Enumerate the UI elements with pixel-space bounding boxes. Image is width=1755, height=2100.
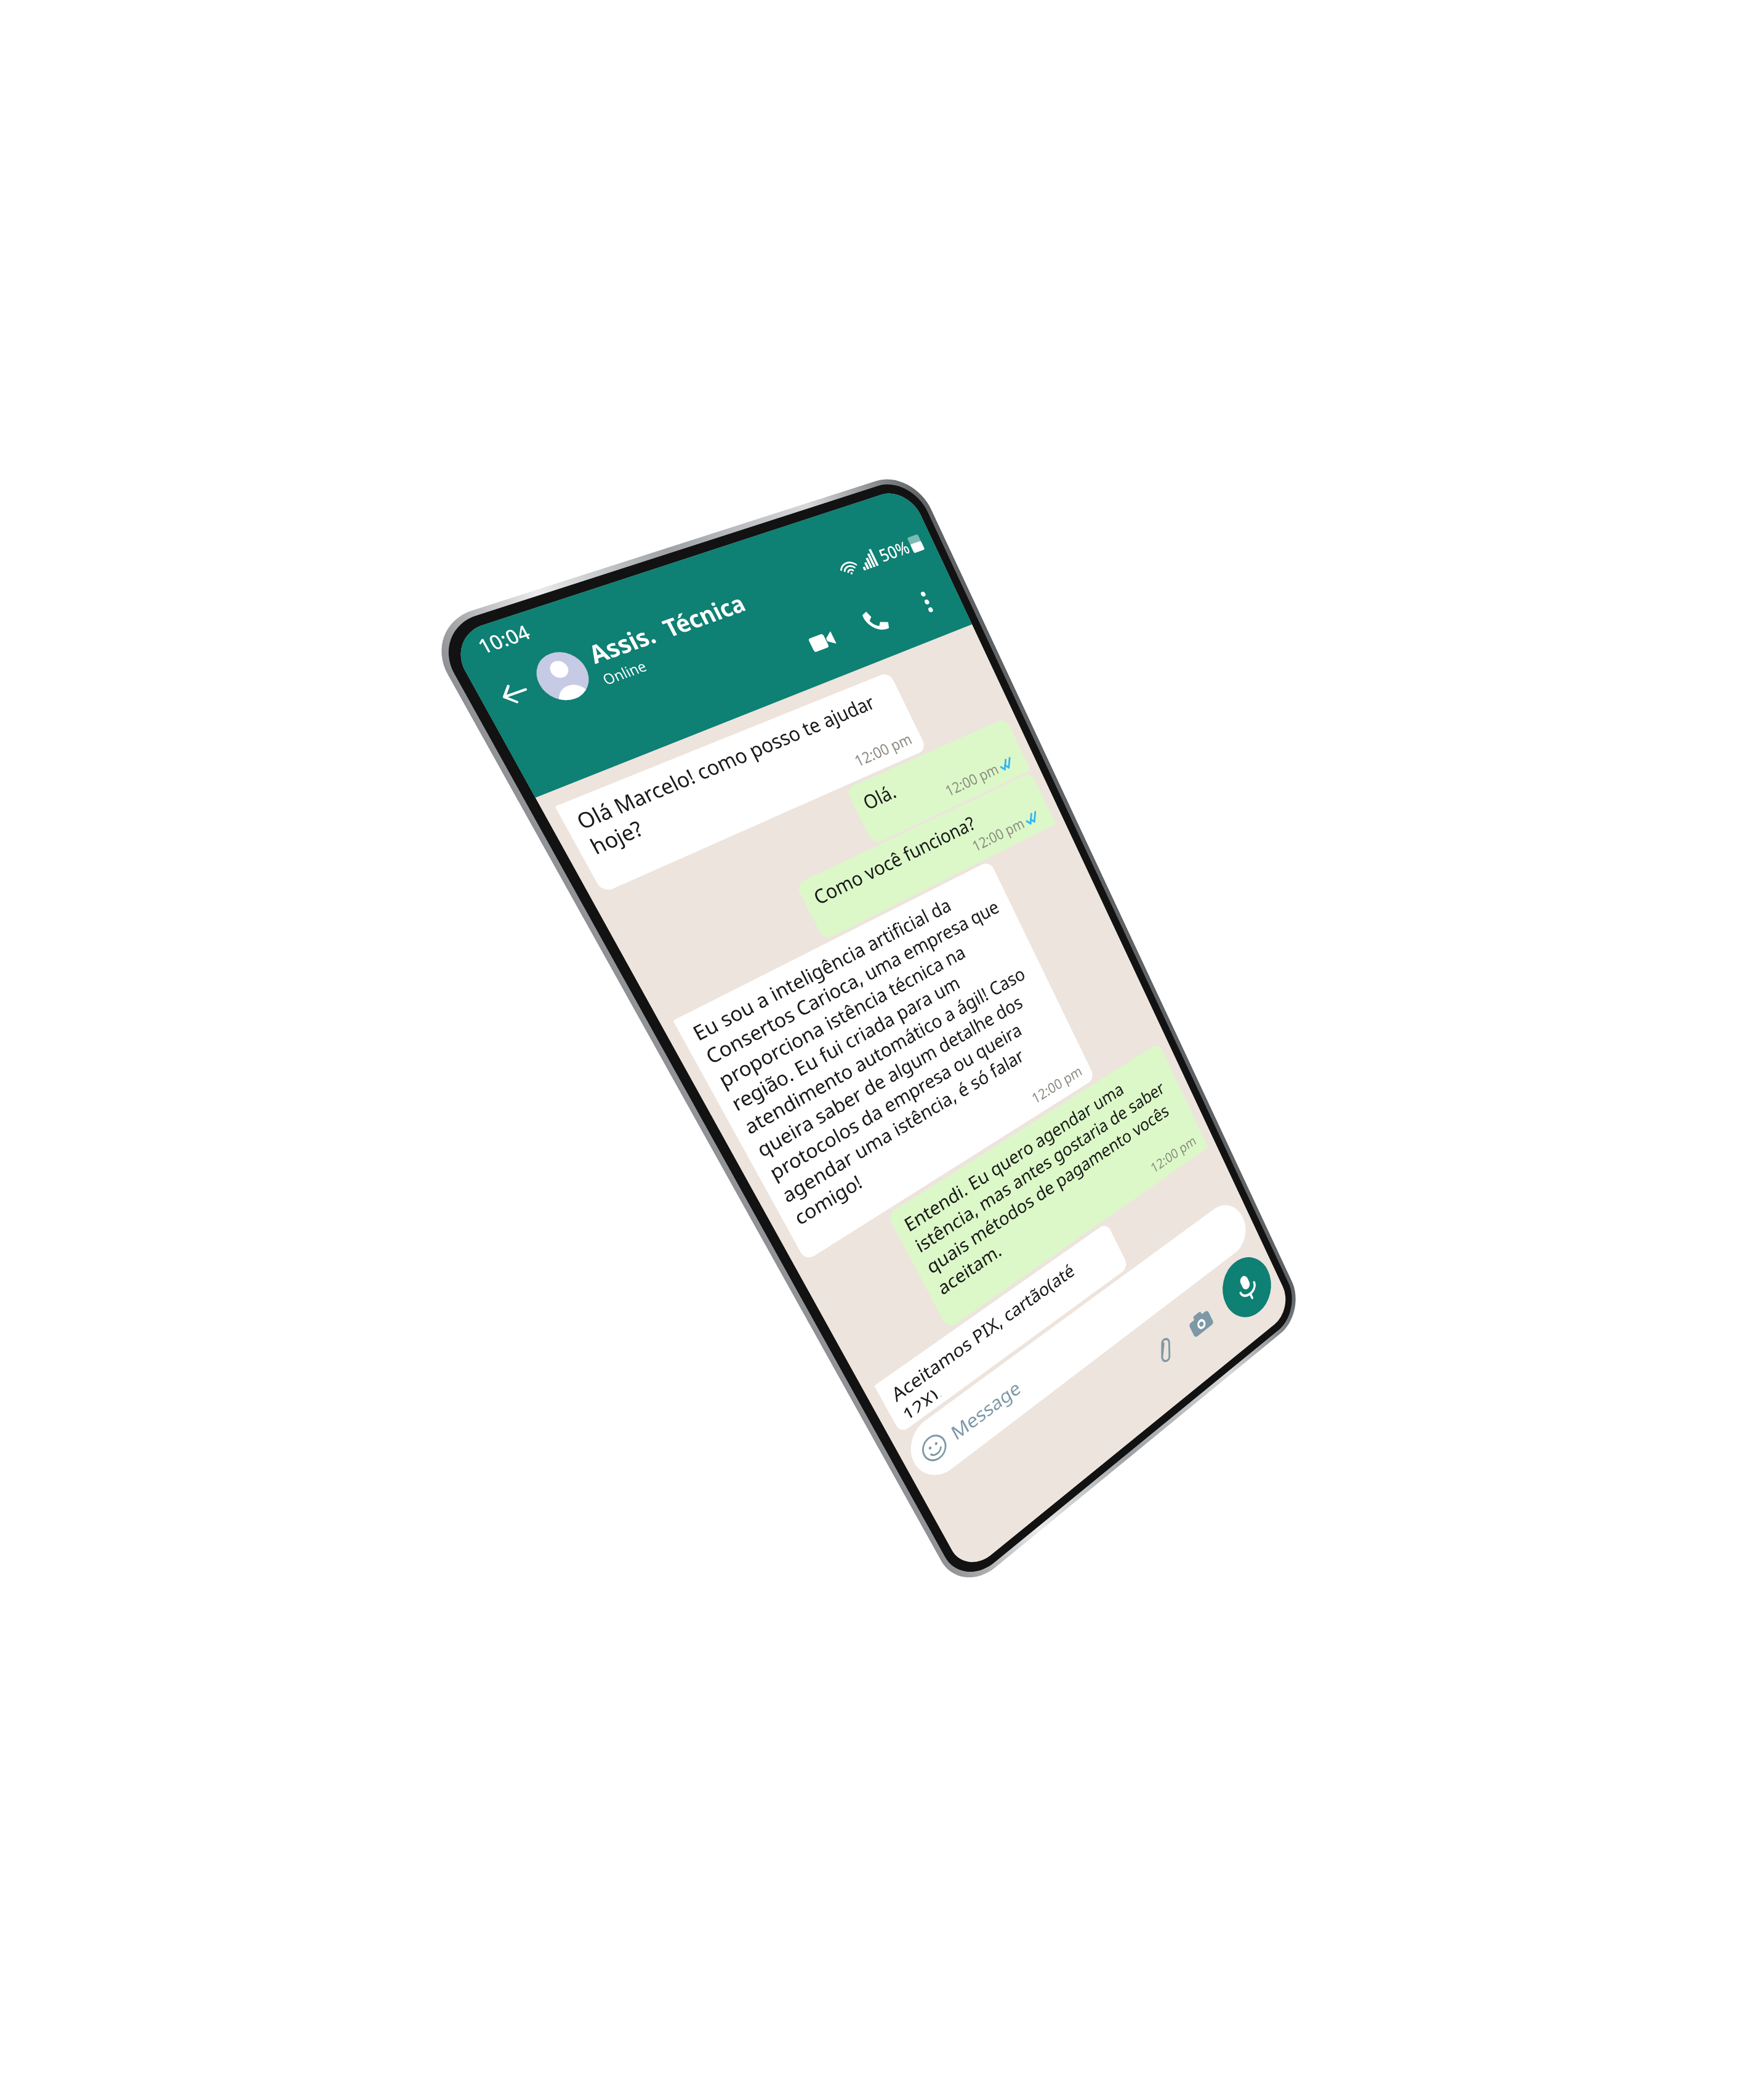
button[interactable]: Olá. [845, 718, 1031, 845]
staticText: 10:04 [472, 618, 535, 660]
button[interactable]: More options [902, 577, 952, 627]
button[interactable]: Eu sou a inteligência artificial da Cons… [673, 861, 1095, 1261]
staticText: Online [599, 656, 650, 689]
staticText: Olá Marcelo! como posso te ajudar hoje? [571, 682, 906, 861]
button[interactable]: Back [483, 666, 546, 721]
button[interactable]: Attach [1142, 1324, 1187, 1379]
staticText: Olá. [858, 778, 900, 815]
staticText: 12:00 pm [1028, 1061, 1085, 1108]
button[interactable]: Video call [795, 616, 849, 668]
staticText: Como você funciona? [809, 810, 979, 910]
button[interactable]: Record voice message [1214, 1246, 1280, 1329]
button[interactable]: Entendi. Eu quero agendar uma istência, … [887, 1043, 1208, 1329]
button[interactable]: Voice call [850, 596, 902, 647]
staticText: 50% [875, 535, 913, 567]
staticText: Message [946, 1374, 1024, 1445]
button[interactable]: Camera [1179, 1296, 1223, 1350]
staticText: Entendi. Eu quero agendar uma istência, … [900, 1053, 1191, 1300]
staticText: 12:00 pm [1148, 1131, 1199, 1177]
staticText: Eu sou a inteligência artificial da Cons… [688, 871, 1077, 1231]
staticText: Aceitamos PIX, cartão(até 12X). [887, 1233, 1118, 1421]
staticText: Assis. Técnica [582, 587, 751, 671]
button[interactable]: Aceitamos PIX, cartão(até 12X). [874, 1223, 1129, 1434]
button[interactable]: Como você funciona? [795, 772, 1056, 941]
staticText: 12:00 pm [942, 759, 1002, 801]
button[interactable]: Message [901, 1195, 1253, 1487]
staticText: 12:00 pm [969, 813, 1027, 856]
button[interactable]: Olá Marcelo! como posso te ajudar hoje? [555, 672, 927, 893]
staticText: 12:00 pm [851, 728, 915, 771]
button[interactable]: Contact photo [527, 645, 598, 707]
